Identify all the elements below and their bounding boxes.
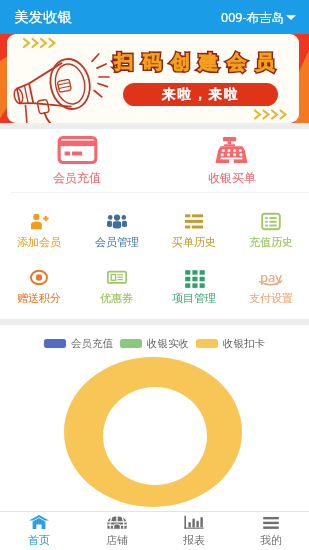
button[interactable]: 会员充值 <box>0 129 154 192</box>
staticText: 会员管理 <box>95 235 139 249</box>
staticText: 来啦，来啦 <box>162 86 240 103</box>
button[interactable]: 项目管理 <box>155 258 232 314</box>
staticText: 收银实收 <box>147 337 189 350</box>
staticText: 收银买单 <box>208 170 256 185</box>
button[interactable]: 首页 <box>0 512 78 550</box>
staticText: pay <box>260 268 282 286</box>
staticText: 项目管理 <box>172 291 216 305</box>
staticText: 首页 <box>28 533 50 547</box>
staticText: 009-布吉岛 <box>221 9 284 26</box>
button[interactable]: pay <box>232 258 309 314</box>
staticText: 优惠券 <box>100 291 133 305</box>
staticText: 会员充值 <box>53 170 101 185</box>
button[interactable]: 会员管理 <box>78 202 155 258</box>
staticText: 买单历史 <box>172 235 216 249</box>
button[interactable]: 我的 <box>232 512 309 550</box>
staticText: 店铺 <box>106 533 128 547</box>
staticText: 收银扣卡 <box>223 337 265 350</box>
button[interactable]: 来啦，来啦 <box>123 83 278 106</box>
button[interactable]: 充值历史 <box>232 202 309 258</box>
staticText: 报表 <box>183 533 205 547</box>
button[interactable]: 009-布吉岛 <box>221 9 296 26</box>
staticText: 支付设置 <box>249 291 293 305</box>
staticText: 扫码创建会员 <box>114 51 284 75</box>
button[interactable]: 添加会员 <box>0 202 78 258</box>
staticText: 充值历史 <box>249 235 293 249</box>
staticText: 我的 <box>260 533 282 547</box>
button[interactable]: 扫码创建会员 <box>7 34 299 123</box>
staticText: 添加会员 <box>17 235 61 249</box>
button[interactable]: 买单历史 <box>155 202 232 258</box>
button[interactable]: 优惠券 <box>78 258 155 314</box>
staticText: 赠送积分 <box>17 291 61 305</box>
button[interactable]: 赠送积分 <box>0 258 78 314</box>
staticText: 会员充值 <box>71 337 113 350</box>
button[interactable]: 收银买单 <box>154 129 309 192</box>
button[interactable]: 店铺 <box>78 512 155 550</box>
staticText: 美发收银 <box>14 8 72 26</box>
button[interactable]: 报表 <box>155 512 232 550</box>
staticText: 扫码创建会员 <box>114 51 284 75</box>
